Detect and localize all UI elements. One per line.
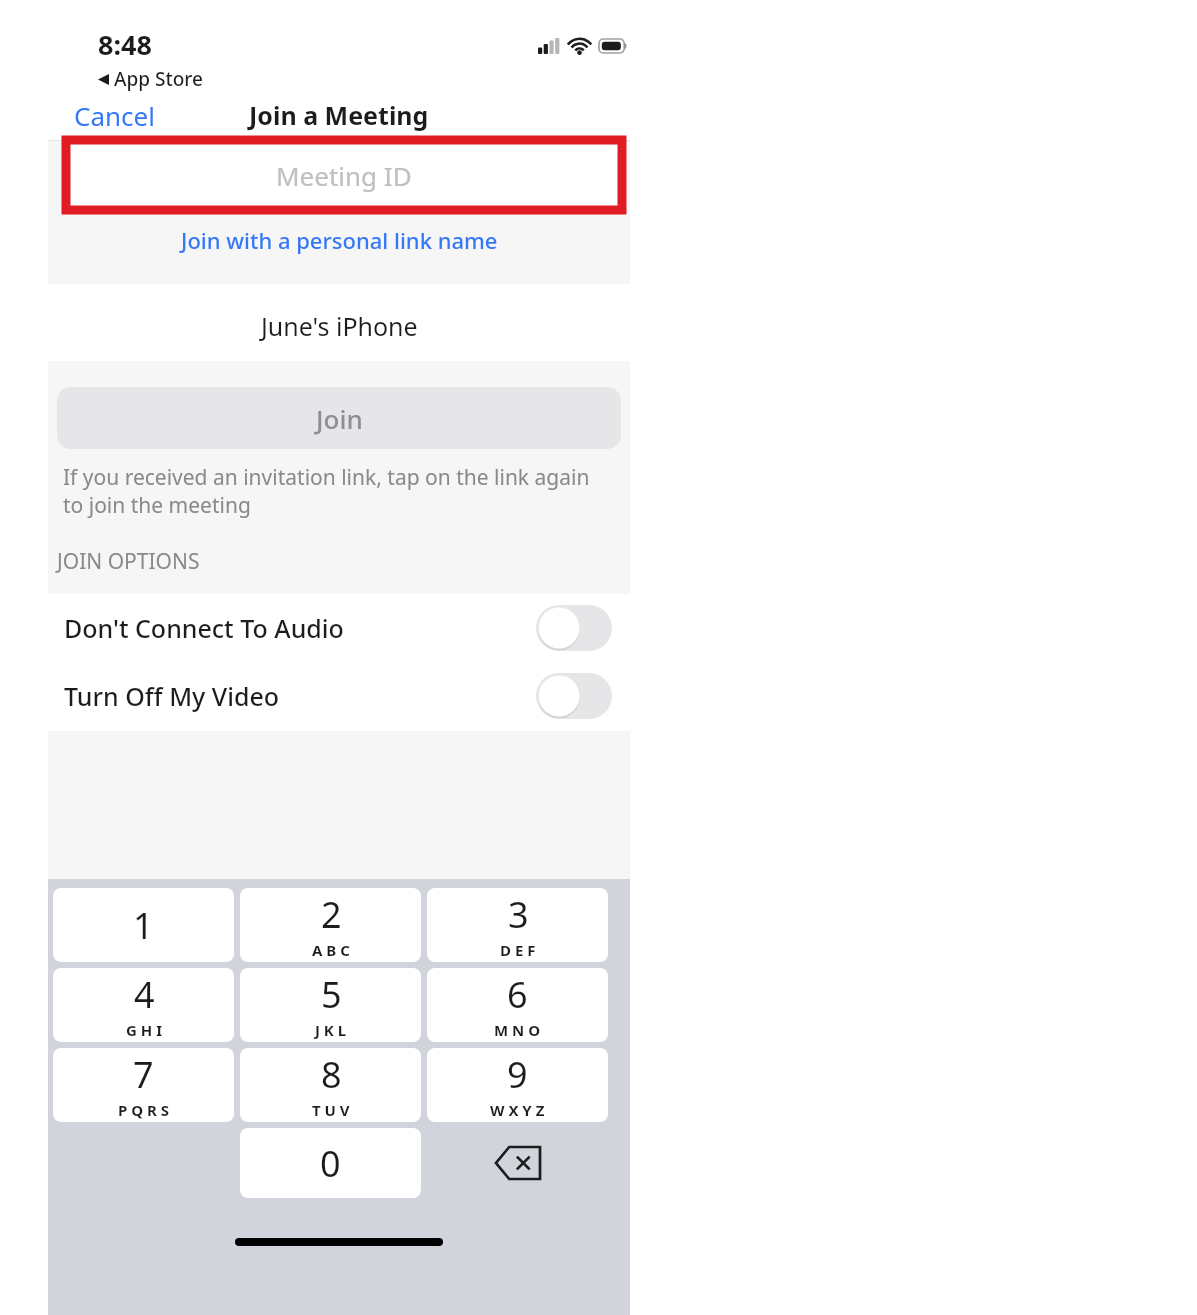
staticText: 2 [321,890,342,939]
staticText: App Store [114,66,203,92]
staticText: 1 [133,901,154,950]
button[interactable]: 3 [427,888,608,962]
staticText: 8 [321,1050,342,1099]
staticText: M N O [494,1020,541,1040]
staticText: 9 [507,1050,528,1099]
staticText: 4 [134,970,155,1019]
staticText: 6 [507,970,528,1019]
staticText: Join a Meeting [249,98,429,132]
staticText: Turn Off My Video [64,679,280,713]
staticText: 5 [321,970,342,1019]
staticText: T U V [312,1100,350,1120]
staticText: JOIN OPTIONS [57,547,200,576]
button[interactable]: 6 [427,968,608,1042]
button[interactable]: Meeting ID [66,140,622,210]
staticText: If you received an invitation link, tap … [63,463,610,519]
staticText: Meeting ID [276,158,412,193]
staticText: 0 [320,1139,341,1188]
button[interactable]: 1 [53,888,234,962]
button[interactable]: 2 [240,888,421,962]
button[interactable]: Join [57,387,621,449]
button[interactable]: 0 [240,1128,421,1198]
staticText: Cancel [74,98,155,133]
button[interactable]: Backspace [424,1128,611,1198]
staticText: June's iPhone [261,309,418,343]
button[interactable]: Cancel [48,92,181,139]
button[interactable]: 5 [240,968,421,1042]
staticText: 8:48 [98,26,152,63]
staticText: Join with a personal link name [181,225,498,255]
button[interactable]: Don't Connect To Audio [48,594,630,662]
button[interactable]: Join with a personal link name [48,210,630,270]
button[interactable]: 7 [53,1048,234,1122]
button[interactable]: 8 [240,1048,421,1122]
staticText: D E F [500,940,536,960]
staticText: 7 [133,1050,154,1099]
staticText: 3 [508,890,529,939]
button[interactable]: 4 [53,968,234,1042]
staticText: J K L [315,1020,347,1040]
staticText: Don't Connect To Audio [64,611,344,645]
staticText: G H I [126,1020,162,1040]
staticText: W X Y Z [490,1100,545,1120]
staticText: P Q R S [118,1100,169,1120]
staticText: Join [316,401,363,436]
button[interactable]: 9 [427,1048,608,1122]
staticText: A B C [312,940,350,960]
button[interactable]: Turn Off My Video [48,662,630,730]
